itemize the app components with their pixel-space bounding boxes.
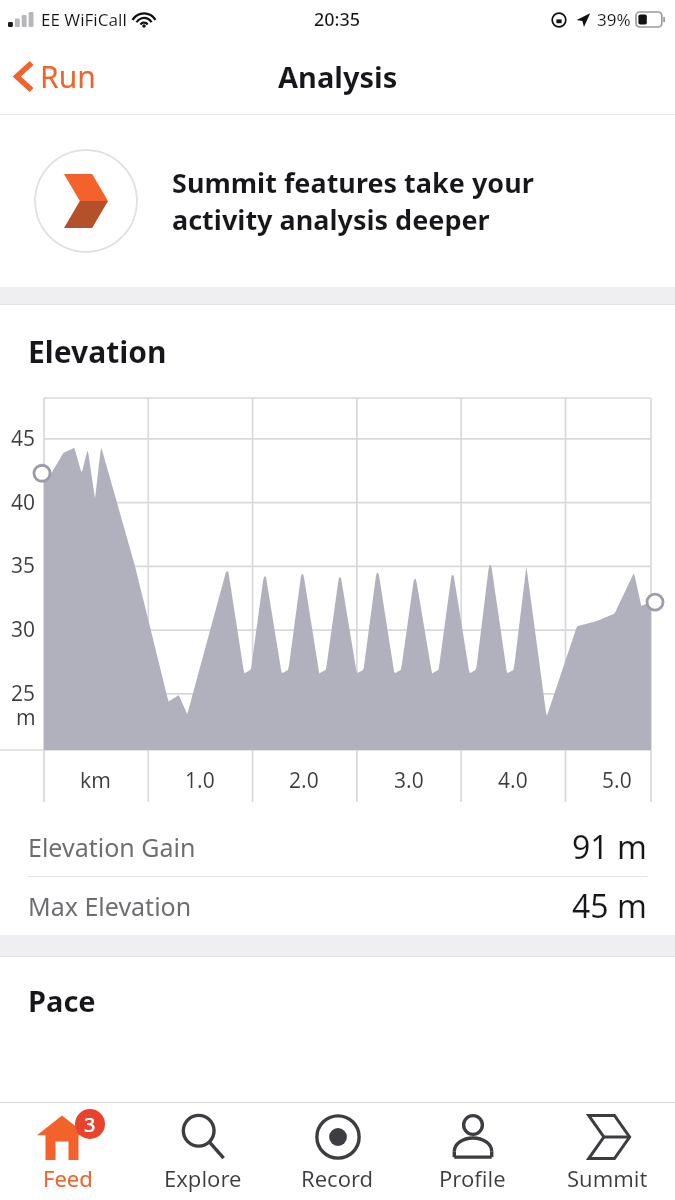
staticText: 91 m [572, 825, 647, 869]
staticText: Analysis [278, 57, 398, 96]
staticText: 1.0 [185, 766, 215, 795]
staticText: Summit features take your [172, 164, 534, 201]
staticText: 3 [84, 1111, 96, 1138]
staticText: Explore [164, 1163, 242, 1193]
staticText: Feed [43, 1163, 93, 1193]
staticText: Run [40, 56, 96, 97]
button[interactable]: Max Elevation [0, 877, 675, 935]
staticText: 20:35 [314, 7, 361, 32]
staticText: Profile [439, 1163, 506, 1193]
button[interactable]: Elevation Gain [0, 818, 675, 876]
staticText: 5.0 [602, 766, 632, 795]
staticText: Record [301, 1163, 374, 1193]
staticText: EE WiFiCall [41, 8, 127, 31]
button[interactable]: Feed [0, 1103, 135, 1200]
staticText: 2.0 [289, 766, 319, 795]
staticText: 25 [11, 679, 36, 708]
staticText: 45 [11, 424, 36, 453]
button[interactable]: Record [270, 1103, 405, 1200]
staticText: Max Elevation [28, 889, 192, 923]
staticText: activity analysis deeper [172, 201, 490, 238]
staticText: 39% [597, 8, 631, 31]
staticText: Elevation Gain [28, 830, 196, 864]
staticText: 45 m [572, 884, 647, 928]
staticText: 4.0 [498, 766, 528, 795]
staticText: 3.0 [394, 766, 424, 795]
staticText: Summit [567, 1163, 648, 1193]
button[interactable]: Explore [135, 1103, 270, 1200]
staticText: 30 [11, 615, 36, 644]
button[interactable]: Summit [540, 1103, 675, 1200]
staticText: Pace [28, 981, 96, 1020]
staticText: km [80, 766, 111, 795]
button[interactable]: Profile [405, 1103, 540, 1200]
staticText: 35 [11, 551, 36, 580]
staticText: 40 [11, 488, 36, 517]
staticText: m [16, 703, 36, 732]
button[interactable]: Summit features take your [0, 115, 675, 287]
button[interactable]: Run [0, 48, 112, 105]
staticText: Elevation [28, 331, 167, 372]
